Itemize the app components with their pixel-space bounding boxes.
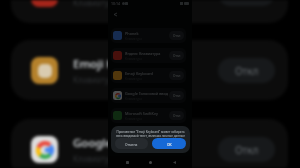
- staticText: Phonek: [125, 31, 139, 36]
- button[interactable]: Откл: [218, 137, 275, 162]
- staticText: Клавиатура: [73, 0, 119, 8]
- staticText: Google: [73, 135, 113, 151]
- staticText: 10:14: [111, 1, 120, 6]
- button[interactable]: Google Голосовой ввод: [111, 88, 186, 103]
- staticText: Откл: [235, 143, 259, 157]
- button[interactable]: Откл: [218, 0, 275, 6]
- staticText: Клавиатура: [125, 37, 142, 41]
- button[interactable]: Откл: [169, 71, 184, 80]
- button[interactable]: Яндекс Клавиатура: [111, 48, 186, 63]
- button[interactable]: Откл: [169, 51, 184, 60]
- button[interactable]: Откл: [218, 58, 275, 83]
- staticText: Клавиатура: [125, 57, 142, 61]
- staticText: Клавиатура: [73, 153, 119, 164]
- staticText: ОК: [167, 142, 172, 146]
- staticText: Откл: [173, 54, 181, 58]
- staticText: Emoji K: [73, 56, 114, 72]
- button[interactable]: Отмена: [115, 138, 148, 149]
- button[interactable]: Microsoft SwiftKey: [111, 108, 186, 123]
- button[interactable]: Откл: [169, 31, 184, 40]
- staticText: Откл: [173, 94, 181, 98]
- staticText: Откл: [173, 114, 181, 118]
- staticText: Google Голосовой ввод: [125, 91, 168, 96]
- staticText: Emoji Keyboard: [125, 71, 153, 76]
- button[interactable]: Phonek: [111, 28, 186, 43]
- staticText: Откл: [173, 74, 181, 78]
- button[interactable]: Recents: [122, 157, 132, 167]
- staticText: Откл: [173, 34, 181, 38]
- staticText: Клавиатура: [125, 97, 142, 101]
- staticText: Клавиатура: [125, 117, 142, 121]
- staticText: Клавиатура: [125, 77, 142, 81]
- button[interactable]: Back: [169, 157, 179, 167]
- staticText: Приложение "Emoji Keyboard" может собира…: [115, 130, 186, 138]
- staticText: Яндекс Клавиатура: [125, 51, 161, 56]
- staticText: Клавиатура: [73, 74, 119, 85]
- staticText: Отмена: [125, 142, 138, 146]
- staticText: Microsoft SwiftKey: [125, 111, 158, 116]
- button[interactable]: Back: [112, 11, 119, 18]
- button[interactable]: Home: [145, 157, 155, 167]
- button[interactable]: Emoji Keyboard: [111, 68, 186, 83]
- button[interactable]: Откл: [169, 91, 184, 100]
- staticText: Откл: [235, 64, 259, 78]
- button[interactable]: Откл: [169, 111, 184, 120]
- button[interactable]: ОК: [152, 138, 186, 149]
